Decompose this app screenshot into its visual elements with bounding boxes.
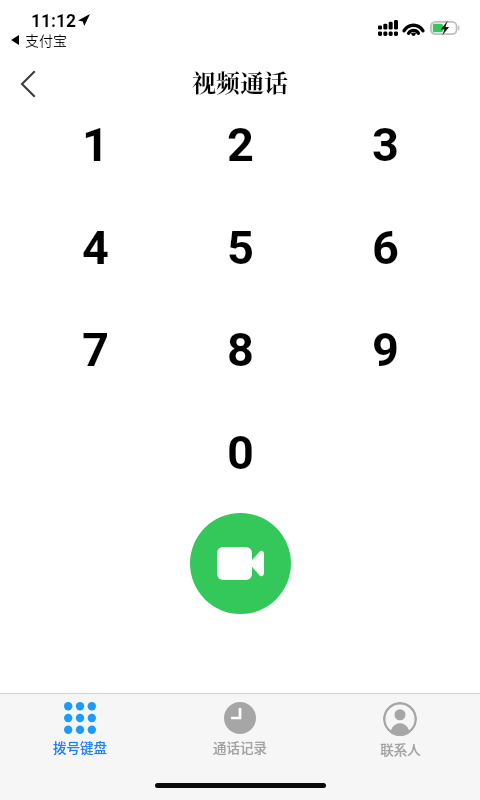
button[interactable]: 拨号键盘 bbox=[0, 694, 160, 757]
button[interactable]: 5 bbox=[194, 209, 286, 285]
staticText: 支付宝 bbox=[25, 30, 67, 50]
staticText: 8 bbox=[227, 322, 254, 377]
staticText: 拨号键盘 bbox=[53, 737, 107, 757]
staticText: 4 bbox=[82, 220, 109, 275]
button[interactable]: 4 bbox=[49, 209, 141, 285]
staticText: 6 bbox=[372, 220, 399, 275]
button[interactable]: Back bbox=[0, 58, 56, 110]
button[interactable]: Start video call bbox=[190, 513, 291, 614]
button[interactable]: 2 bbox=[194, 106, 286, 182]
button[interactable]: 7 bbox=[49, 311, 141, 387]
button[interactable]: 6 bbox=[339, 209, 431, 285]
button[interactable]: 1 bbox=[49, 106, 141, 182]
staticText: 7 bbox=[82, 322, 109, 377]
staticText: 0 bbox=[227, 425, 254, 480]
button[interactable]: 3 bbox=[339, 106, 431, 182]
button[interactable]: 8 bbox=[194, 311, 286, 387]
button[interactable]: 通话记录 bbox=[160, 694, 320, 757]
staticText: 3 bbox=[372, 117, 399, 172]
button[interactable]: 9 bbox=[339, 311, 431, 387]
staticText: 2 bbox=[227, 117, 254, 172]
staticText: 9 bbox=[372, 322, 399, 377]
staticText: 5 bbox=[227, 220, 254, 275]
staticText: 通话记录 bbox=[213, 737, 267, 757]
button[interactable]: 0 bbox=[194, 414, 286, 490]
staticText: 联系人 bbox=[380, 739, 421, 759]
staticText: 1 bbox=[82, 117, 109, 172]
staticText: 视频通话 bbox=[192, 64, 288, 98]
button[interactable]: 联系人 bbox=[320, 694, 480, 759]
staticText: 11:12 bbox=[31, 11, 77, 32]
